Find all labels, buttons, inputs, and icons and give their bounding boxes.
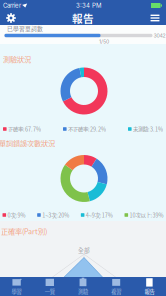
staticText: 3042 xyxy=(153,32,165,39)
staticText: 正確率(Part別) xyxy=(1,226,47,236)
staticText: 0次:9% xyxy=(7,211,25,219)
staticText: 1~3次:20% xyxy=(42,211,69,219)
staticText: 複習 xyxy=(111,288,121,295)
staticText: 測驗 xyxy=(78,288,88,295)
button[interactable]: 學習 xyxy=(0,277,33,296)
button[interactable]: 複習 xyxy=(100,277,133,296)
staticText: 正確率:67.7% xyxy=(8,125,41,133)
staticText: Carrier xyxy=(3,2,21,9)
staticText: 未測驗:3.1% xyxy=(133,125,163,133)
staticText: 報告 xyxy=(144,288,154,295)
button[interactable]: Menu xyxy=(144,11,166,25)
staticText: 測驗狀況 xyxy=(3,54,31,64)
staticText: 報告 xyxy=(72,10,94,26)
button[interactable]: 測驗 xyxy=(66,277,100,296)
staticText: 1/50 xyxy=(99,38,109,45)
staticText: 10次以上:39% xyxy=(129,211,163,219)
staticText: 已學習單詞數 xyxy=(7,24,43,33)
button[interactable]: 報告 xyxy=(133,277,166,296)
button[interactable]: Settings xyxy=(0,11,22,25)
staticText: 學習 xyxy=(12,288,22,295)
staticText: 單詞錯誤次數狀況 xyxy=(0,138,55,148)
button[interactable]: 一覽 xyxy=(33,277,66,296)
staticText: 全部 xyxy=(78,246,90,254)
staticText: 4~9次:17% xyxy=(86,211,113,219)
staticText: 一覽 xyxy=(45,288,55,295)
staticText: 不正確率:29.2% xyxy=(68,125,106,133)
staticText: 3:34 PM xyxy=(76,2,102,9)
